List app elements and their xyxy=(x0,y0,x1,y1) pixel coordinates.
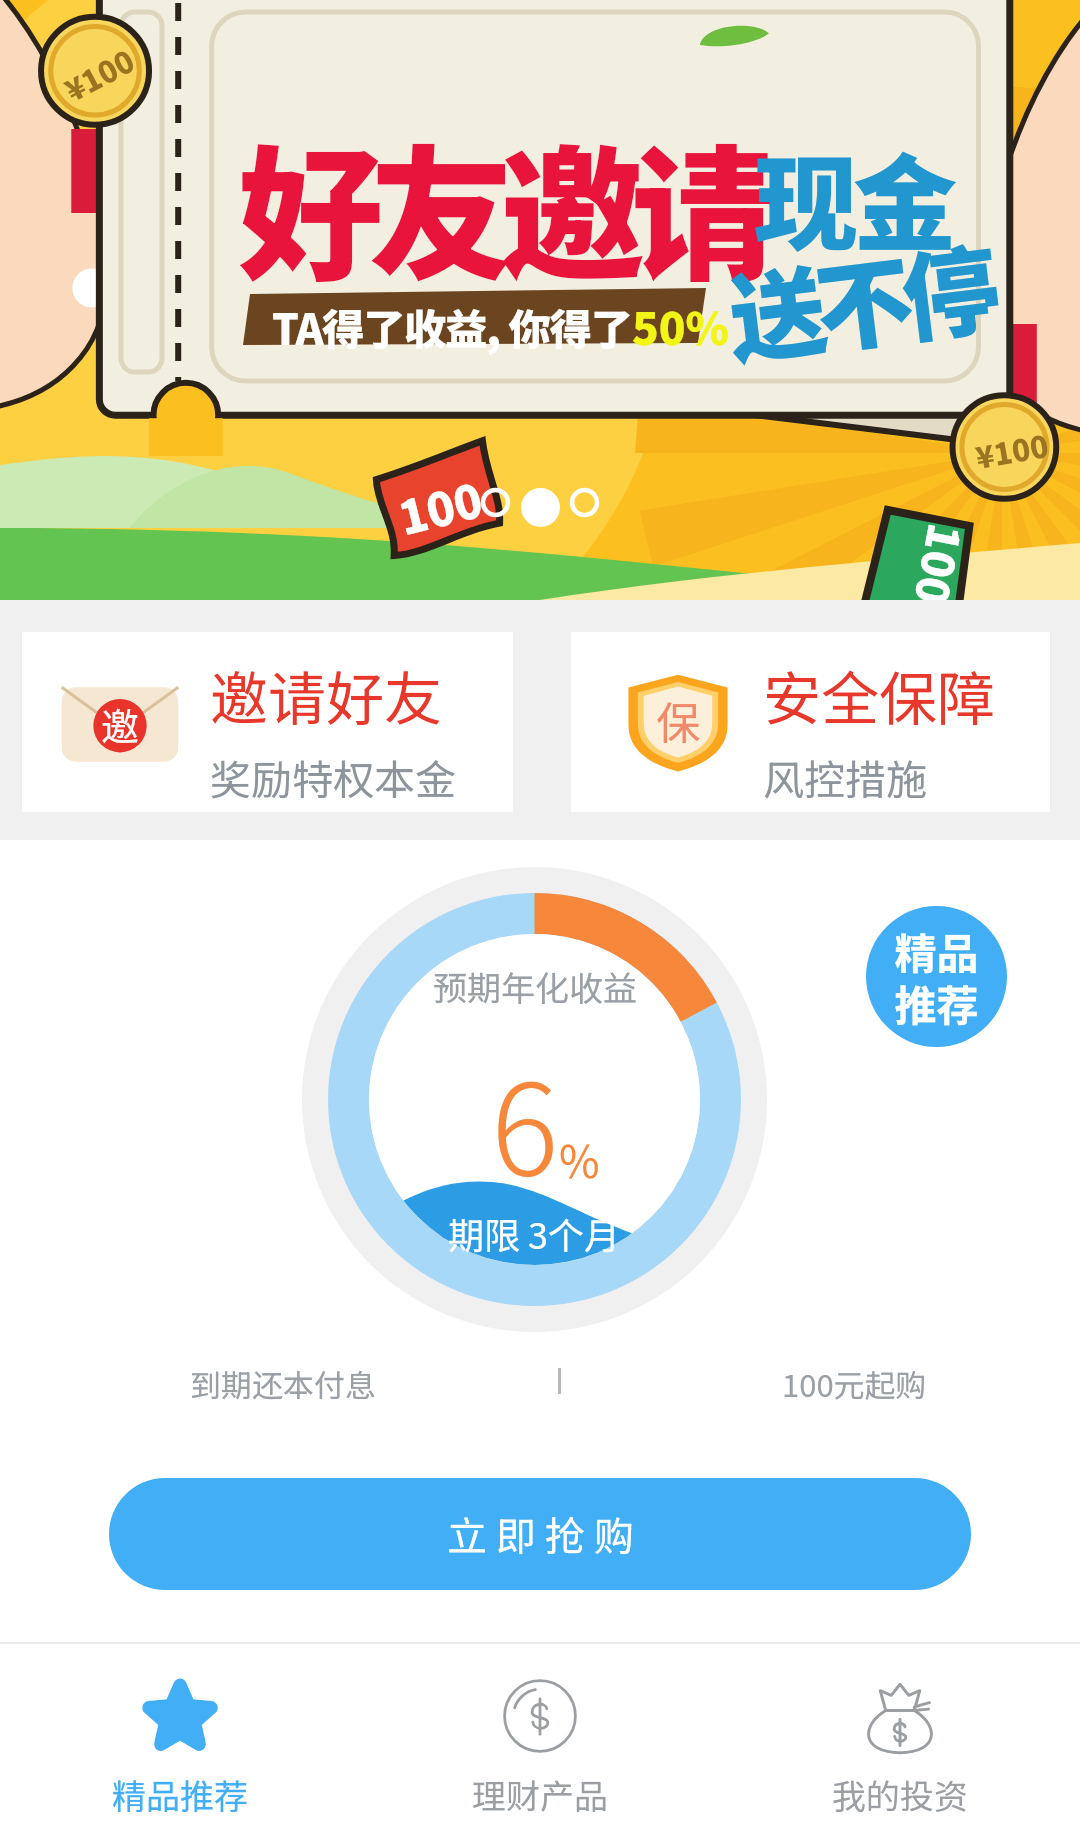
button[interactable]: 精品 推荐 xyxy=(866,906,1007,1047)
staticText: 邀 xyxy=(101,697,140,752)
staticText: 到期还本付息 xyxy=(190,1361,376,1406)
staticText: 风控措施 xyxy=(763,747,927,806)
staticText: 邀请好友 xyxy=(210,653,443,737)
staticText: 精品 推荐 xyxy=(894,920,979,1033)
staticText: 6 xyxy=(491,1029,559,1211)
staticText: TA得了收益, 你得了 xyxy=(272,296,632,357)
button[interactable]: 立 即 抢 购 xyxy=(109,1478,971,1590)
staticText: 期限 3个月 xyxy=(448,1207,621,1259)
staticText: 100 xyxy=(391,464,490,549)
staticText: 100 xyxy=(901,519,980,611)
staticText: 预期年化收益 xyxy=(433,962,637,1011)
button[interactable]: 精品推荐 xyxy=(0,1644,360,1845)
staticText: 立 即 抢 购 xyxy=(447,1505,634,1563)
staticText: 我的投资 xyxy=(832,1770,968,1819)
staticText: 好友邀请 xyxy=(238,100,762,310)
button[interactable]: Page 1 xyxy=(478,485,513,520)
staticText: % xyxy=(559,1127,600,1191)
staticText: 50% xyxy=(632,294,729,358)
button[interactable]: 好友邀请 现金送不停 xyxy=(0,0,1080,600)
staticText: 理财产品 xyxy=(472,1770,608,1819)
staticText: 精品推荐 xyxy=(112,1770,248,1819)
staticText: 送不停 xyxy=(720,213,996,383)
staticText: 现金 xyxy=(754,121,953,272)
button[interactable]: 邀 xyxy=(22,632,513,812)
button[interactable]: 理财产品 xyxy=(360,1644,720,1845)
button[interactable]: Page 2 xyxy=(518,485,563,530)
staticText: 安全保障 xyxy=(763,653,996,737)
button[interactable]: 保 xyxy=(571,632,1050,812)
staticText: 保 xyxy=(656,688,700,752)
staticText: ¥100 xyxy=(56,37,142,110)
button[interactable]: 我的投资 xyxy=(720,1644,1080,1845)
button[interactable]: Page 3 xyxy=(567,485,602,520)
staticText: 100元起购 xyxy=(782,1361,927,1406)
staticText: 奖励特权本金 xyxy=(210,747,456,806)
staticText: ¥100 xyxy=(972,422,1052,477)
